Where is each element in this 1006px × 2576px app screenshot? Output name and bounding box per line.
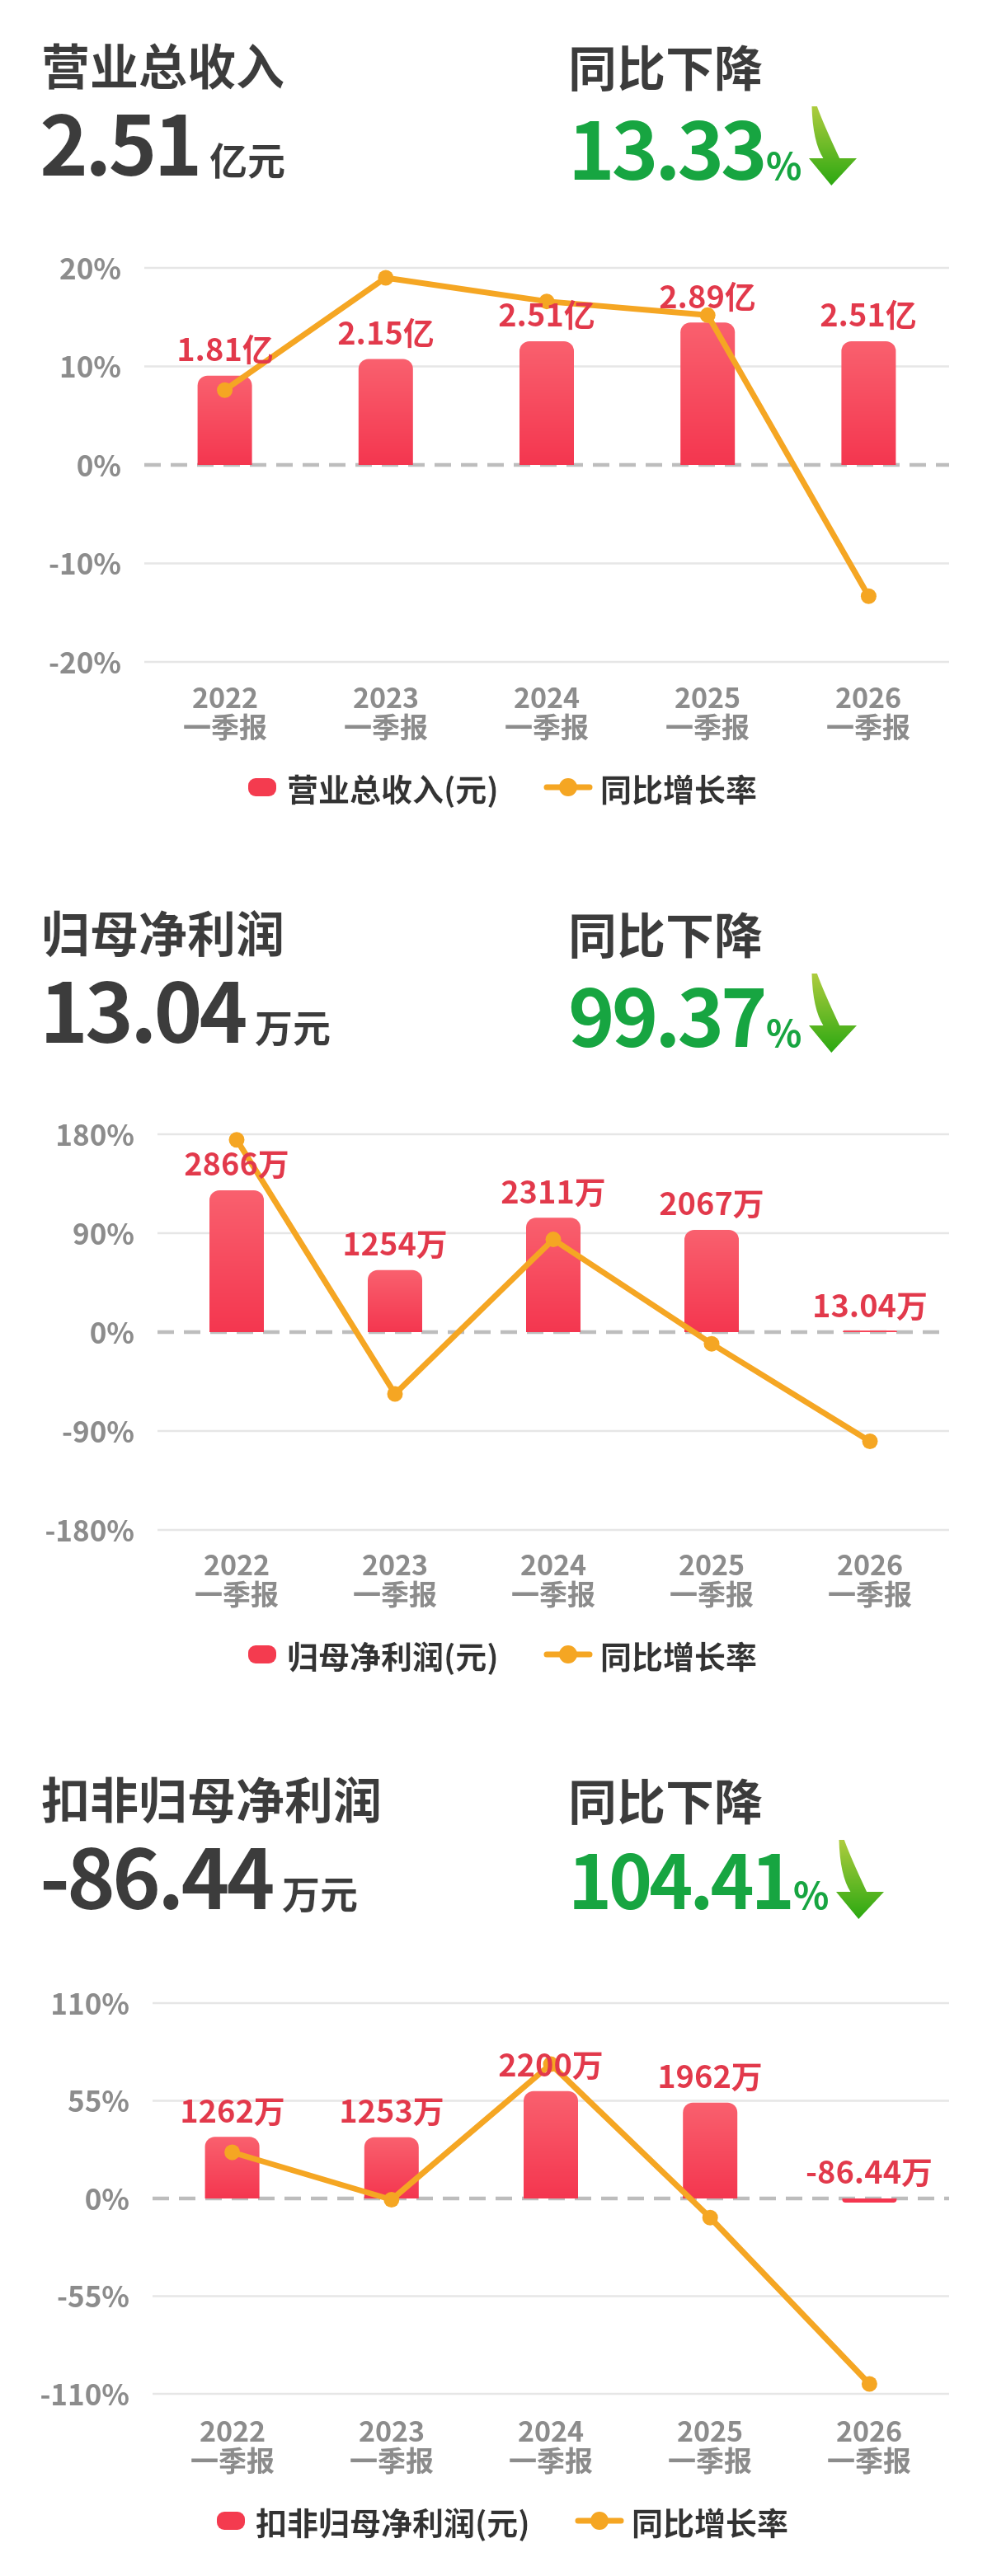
staticText: 一季报 <box>609 706 806 746</box>
staticText: 2.51亿 <box>736 290 1000 335</box>
staticText: 2.89亿 <box>576 272 839 317</box>
staticText: 0% <box>0 2176 129 2218</box>
staticText: 2.15亿 <box>254 308 518 354</box>
staticText: % <box>766 137 802 190</box>
staticText: 13.04万 <box>738 1281 1002 1326</box>
staticText: 1262万 <box>101 2086 364 2132</box>
staticText: 1962万 <box>578 2052 842 2097</box>
button[interactable]: 营业总收入(元) <box>248 765 758 809</box>
staticText: 104.41 <box>568 1823 792 1931</box>
staticText: 一季报 <box>769 706 967 746</box>
staticText: 归母净利润(元) <box>287 1632 499 1677</box>
staticText: 2024 <box>452 2409 650 2450</box>
staticText: 2.51亿 <box>415 290 679 335</box>
staticText: 一季报 <box>770 2439 968 2480</box>
staticText: 一季报 <box>771 1573 969 1613</box>
staticText: -110% <box>0 2372 129 2414</box>
staticText: 2022 <box>138 1543 336 1584</box>
staticText: 10% <box>0 344 121 386</box>
staticText: 万元 <box>255 998 331 1053</box>
staticText: 2024 <box>448 676 646 716</box>
staticText: 90% <box>0 1211 134 1253</box>
staticText: 同比增长率 <box>600 1632 758 1677</box>
staticText: 一季报 <box>138 1573 336 1613</box>
staticText: 一季报 <box>611 2439 809 2480</box>
staticText: 2026 <box>770 2409 968 2450</box>
button[interactable]: 扣非归母净利润(元) <box>217 2499 789 2543</box>
staticText: 一季报 <box>134 2439 331 2480</box>
staticText: -86.44 <box>40 1814 272 1933</box>
staticText: 2866万 <box>105 1139 369 1185</box>
staticText: 一季报 <box>287 706 485 746</box>
staticText: 同比下降 <box>568 898 914 968</box>
staticText: 扣非归母净利润(元) <box>256 2499 530 2543</box>
staticText: 1253万 <box>260 2086 524 2132</box>
staticText: 1254万 <box>263 1219 527 1265</box>
staticText: 2026 <box>771 1543 969 1584</box>
staticText: 55% <box>0 2078 129 2120</box>
staticText: 2025 <box>613 1543 811 1584</box>
staticText: 13.33 <box>568 88 764 203</box>
staticText: 营业总收入 <box>41 29 388 99</box>
staticText: 一季报 <box>126 706 324 746</box>
staticText: 0% <box>0 443 121 485</box>
staticText: -20% <box>0 640 121 682</box>
staticText: 一季报 <box>296 1573 494 1613</box>
staticText: 同比增长率 <box>600 765 758 809</box>
staticText: 180% <box>0 1112 134 1154</box>
staticText: 2024 <box>454 1543 652 1584</box>
staticText: 2023 <box>293 2409 491 2450</box>
staticText: 110% <box>0 1981 129 2023</box>
staticText: 20% <box>0 246 121 288</box>
staticText: 2022 <box>126 676 324 716</box>
staticText: 2023 <box>296 1543 494 1584</box>
staticText: 一季报 <box>452 2439 650 2480</box>
staticText: 1.81亿 <box>93 325 357 370</box>
staticText: 2067万 <box>580 1179 844 1224</box>
staticText: 同比下降 <box>568 1764 914 1834</box>
staticText: 扣非归母净利润 <box>41 1762 388 1832</box>
staticText: 2.51 <box>40 80 200 199</box>
staticText: 13.04 <box>40 947 245 1067</box>
staticText: 99.37 <box>568 955 764 1070</box>
staticText: -55% <box>0 2273 129 2316</box>
button[interactable]: 归母净利润(元) <box>248 1632 758 1677</box>
staticText: % <box>793 1866 830 1920</box>
staticText: % <box>766 1004 802 1058</box>
staticText: 2025 <box>611 2409 809 2450</box>
staticText: 同比增长率 <box>632 2499 789 2543</box>
staticText: 2023 <box>287 676 485 716</box>
staticText: 2025 <box>609 676 806 716</box>
staticText: 2026 <box>769 676 967 716</box>
staticText: 2311万 <box>421 1167 685 1213</box>
staticText: 亿元 <box>209 131 285 186</box>
staticText: 一季报 <box>293 2439 491 2480</box>
staticText: -180% <box>0 1508 134 1550</box>
staticText: 万元 <box>282 1865 358 1920</box>
staticText: 2022 <box>134 2409 331 2450</box>
staticText: 同比下降 <box>568 30 914 101</box>
staticText: 一季报 <box>613 1573 811 1613</box>
staticText: 一季报 <box>454 1573 652 1613</box>
staticText: -90% <box>0 1409 134 1451</box>
staticText: 一季报 <box>448 706 646 746</box>
staticText: 2200万 <box>419 2040 683 2086</box>
staticText: -10% <box>0 541 121 583</box>
staticText: 归母净利润 <box>41 896 388 966</box>
staticText: -86.44万 <box>737 2147 1001 2193</box>
staticText: 0% <box>0 1310 134 1352</box>
staticText: 营业总收入(元) <box>287 765 499 809</box>
